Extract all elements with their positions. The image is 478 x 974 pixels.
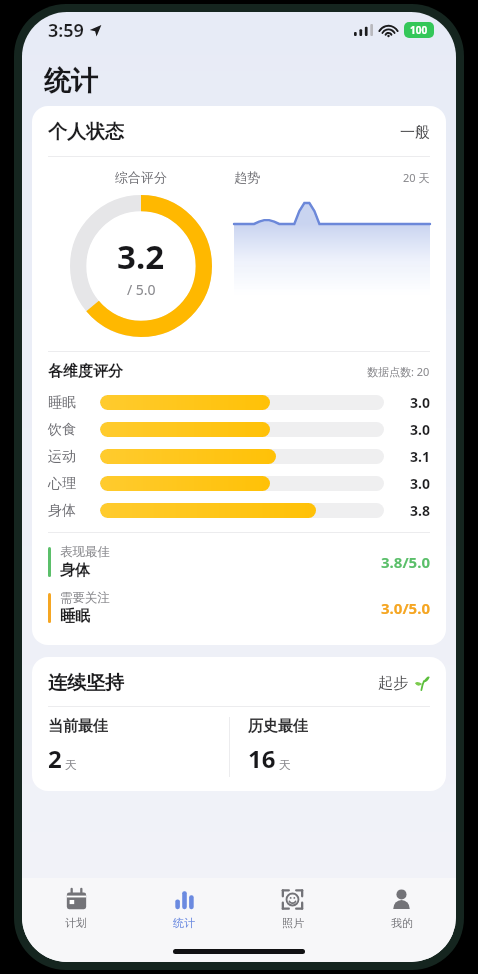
staticText: 各维度评分 — [48, 362, 123, 381]
button[interactable]: 需要关注 — [48, 587, 430, 629]
button[interactable]: 个人状态 — [32, 106, 446, 645]
staticText: 身体 — [60, 561, 90, 580]
button[interactable]: 照片 — [238, 878, 347, 940]
staticText: 3.8 — [410, 501, 430, 520]
button[interactable]: 统计 — [130, 878, 238, 940]
staticText: 2 — [48, 742, 62, 775]
staticText: 统计 — [44, 64, 98, 98]
staticText: 3.0 — [410, 393, 430, 412]
staticText: 计划 — [65, 916, 87, 930]
staticText: 睡眠 — [60, 607, 90, 626]
staticText: 睡眠 — [48, 394, 100, 412]
staticText: 饮食 — [48, 421, 100, 439]
staticText: 统计 — [173, 916, 195, 930]
staticText: 个人状态 — [48, 120, 124, 144]
staticText: 16 — [248, 742, 276, 775]
staticText: 照片 — [282, 916, 304, 930]
staticText: 天 — [65, 757, 77, 772]
staticText: 天 — [279, 757, 291, 772]
staticText: 20 天 — [403, 170, 430, 185]
staticText: 数据点数: 20 — [367, 364, 430, 379]
staticText: 3.0 — [410, 420, 430, 439]
button[interactable]: 计划 — [22, 878, 130, 940]
staticText: 3.0/5.0 — [381, 598, 430, 618]
staticText: 身体 — [48, 502, 100, 520]
staticText: / 5.0 — [127, 280, 156, 299]
button[interactable]: 表现最佳 — [48, 541, 430, 583]
staticText: 需要关注 — [60, 590, 110, 606]
staticText: 3.1 — [410, 447, 430, 466]
staticText: 连续坚持 — [48, 671, 124, 695]
staticText: 一般 — [400, 123, 430, 142]
staticText: 3.0 — [410, 474, 430, 493]
staticText: 3.2 — [117, 234, 165, 279]
button[interactable]: 连续坚持 — [32, 657, 446, 791]
staticText: 趋势 — [234, 169, 260, 185]
staticText: 当前最佳 — [48, 717, 108, 736]
staticText: 历史最佳 — [248, 717, 308, 736]
staticText: 起步 — [378, 674, 408, 693]
staticText: 我的 — [391, 916, 413, 930]
staticText: 综合评分 — [115, 169, 167, 185]
staticText: 3.8/5.0 — [381, 552, 430, 572]
staticText: 心理 — [48, 475, 100, 493]
staticText: 运动 — [48, 448, 100, 466]
staticText: 表现最佳 — [60, 544, 110, 560]
staticText: 3:59 — [48, 18, 84, 43]
button[interactable]: 我的 — [347, 878, 456, 940]
staticText: 100 — [410, 23, 428, 37]
